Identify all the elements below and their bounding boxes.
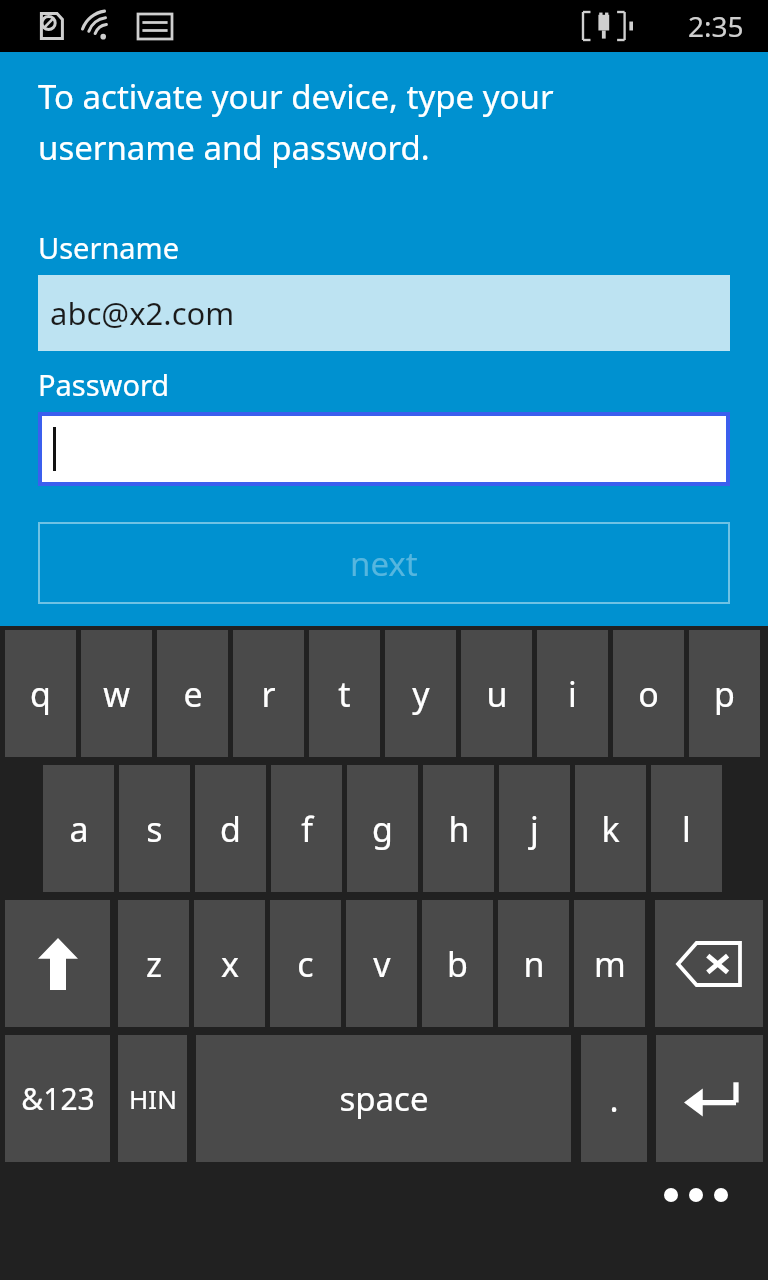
staticText: g	[372, 806, 393, 852]
staticText: next	[350, 541, 418, 586]
staticText: Username	[38, 228, 180, 267]
staticText: a	[69, 806, 89, 852]
button[interactable]: i	[537, 630, 608, 757]
staticText: p	[714, 671, 735, 717]
staticText: b	[447, 941, 468, 987]
button[interactable]: k	[575, 765, 646, 892]
button[interactable]	[42, 416, 726, 482]
button[interactable]: r	[233, 630, 304, 757]
button[interactable]: o	[613, 630, 684, 757]
staticText: j	[530, 806, 539, 852]
staticText: u	[486, 671, 508, 717]
staticText: f	[301, 806, 313, 852]
button[interactable]: More options	[656, 1170, 736, 1220]
button[interactable]: t	[309, 630, 380, 757]
staticText: k	[601, 806, 620, 852]
button[interactable]: g	[347, 765, 418, 892]
button[interactable]: Backspace	[655, 900, 763, 1027]
button[interactable]: c	[270, 900, 341, 1027]
staticText: r	[261, 671, 276, 717]
button[interactable]: q	[5, 630, 76, 757]
button[interactable]: b	[422, 900, 493, 1027]
staticText: y	[412, 671, 430, 717]
button[interactable]: m	[574, 900, 645, 1027]
button[interactable]: Enter	[656, 1035, 763, 1162]
staticText: abc@x2.com	[50, 292, 235, 334]
staticText: q	[30, 671, 51, 717]
staticText: .	[609, 1076, 619, 1122]
staticText: h	[448, 806, 470, 852]
staticText: o	[638, 671, 659, 717]
button[interactable]: h	[423, 765, 494, 892]
button[interactable]: w	[81, 630, 152, 757]
button[interactable]: x	[194, 900, 265, 1027]
staticText: HIN	[129, 1081, 177, 1116]
staticText: v	[373, 941, 391, 987]
button[interactable]: j	[499, 765, 570, 892]
staticText: &123	[21, 1078, 95, 1119]
button[interactable]: n	[498, 900, 569, 1027]
button[interactable]: e	[157, 630, 228, 757]
button[interactable]: p	[689, 630, 760, 757]
staticText: 2:35	[688, 7, 744, 45]
button[interactable]: f	[271, 765, 342, 892]
staticText: z	[146, 941, 162, 987]
button[interactable]: .	[581, 1035, 647, 1162]
staticText: space	[339, 1076, 429, 1121]
button[interactable]: d	[195, 765, 266, 892]
button[interactable]: y	[385, 630, 456, 757]
staticText: To activate your device, type your usern…	[38, 74, 618, 170]
staticText: e	[183, 671, 203, 717]
button[interactable]: l	[651, 765, 722, 892]
button[interactable]: s	[119, 765, 190, 892]
button[interactable]: a	[43, 765, 114, 892]
button[interactable]: space	[196, 1035, 571, 1162]
staticText: i	[568, 671, 577, 717]
button[interactable]: u	[461, 630, 532, 757]
staticText: w	[103, 671, 130, 717]
button[interactable]: z	[118, 900, 189, 1027]
button[interactable]: abc@x2.com	[38, 275, 730, 351]
button[interactable]: next	[38, 522, 730, 604]
button[interactable]: HIN	[118, 1035, 187, 1162]
button[interactable]: v	[346, 900, 417, 1027]
staticText: x	[221, 941, 239, 987]
staticText: d	[220, 806, 241, 852]
staticText: t	[338, 671, 351, 717]
button[interactable]: Shift	[5, 900, 110, 1027]
staticText: l	[682, 806, 691, 852]
staticText: n	[523, 941, 545, 987]
staticText: Password	[38, 365, 170, 404]
button[interactable]: &123	[5, 1035, 110, 1162]
staticText: c	[297, 941, 314, 987]
staticText: m	[594, 941, 626, 987]
staticText: s	[146, 806, 163, 852]
